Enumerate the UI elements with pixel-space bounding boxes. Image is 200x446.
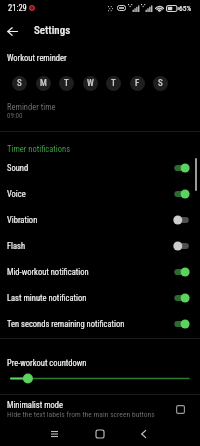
button[interactable]: Reminder time — [0, 102, 200, 120]
button[interactable]: Recent apps — [42, 423, 67, 444]
button[interactable]: Sound — [0, 155, 200, 181]
button[interactable]: Back — [131, 423, 156, 444]
button[interactable]: Minimalist mode — [172, 401, 189, 418]
staticText: Ten seconds remaining notification — [7, 319, 173, 329]
staticText: Hide the text labels from the main scree… — [7, 410, 155, 419]
staticText: Workout reminder — [7, 53, 67, 63]
staticText: F — [135, 78, 140, 89]
staticText: Vibration — [7, 215, 173, 225]
staticText: Settings — [34, 24, 71, 37]
staticText: Last minute notification — [7, 293, 173, 303]
staticText: 65% — [179, 4, 192, 13]
button[interactable]: Mid-workout notification — [0, 259, 200, 285]
button[interactable]: Last minute notification — [0, 285, 200, 311]
button[interactable]: Home — [87, 423, 112, 444]
staticText: Sound — [7, 163, 173, 173]
staticText: 21:29 — [8, 3, 27, 13]
staticText: Timer notifications — [7, 144, 71, 154]
button[interactable]: Minimalist mode — [0, 400, 200, 419]
staticText: T — [111, 78, 116, 89]
button[interactable]: T — [106, 76, 121, 91]
staticText: W — [87, 78, 94, 89]
staticText: Minimalist mode — [7, 400, 64, 410]
button[interactable]: S — [12, 76, 27, 91]
staticText: T — [64, 78, 69, 89]
staticText: Pre-workout countdown — [7, 358, 87, 368]
button[interactable]: M — [36, 76, 51, 91]
button[interactable]: T — [59, 76, 74, 91]
button[interactable]: S — [153, 76, 168, 91]
button[interactable]: Flash — [0, 233, 200, 259]
staticText: M — [40, 78, 47, 89]
staticText: Voice — [7, 189, 173, 199]
button[interactable]: Voice — [0, 181, 200, 207]
staticText: Reminder time — [7, 102, 56, 112]
button[interactable]: Navigate up — [0, 19, 24, 43]
staticText: S — [17, 78, 22, 89]
button[interactable]: F — [130, 76, 145, 91]
button[interactable] — [0, 372, 200, 385]
staticText: Mid-workout notification — [7, 267, 173, 277]
button[interactable]: Vibration — [0, 207, 200, 233]
staticText: Flash — [7, 241, 173, 251]
staticText: 09:00 — [7, 112, 23, 120]
staticText: S — [158, 78, 163, 89]
button[interactable]: W — [83, 76, 98, 91]
button[interactable]: Ten seconds remaining notification — [0, 311, 200, 337]
